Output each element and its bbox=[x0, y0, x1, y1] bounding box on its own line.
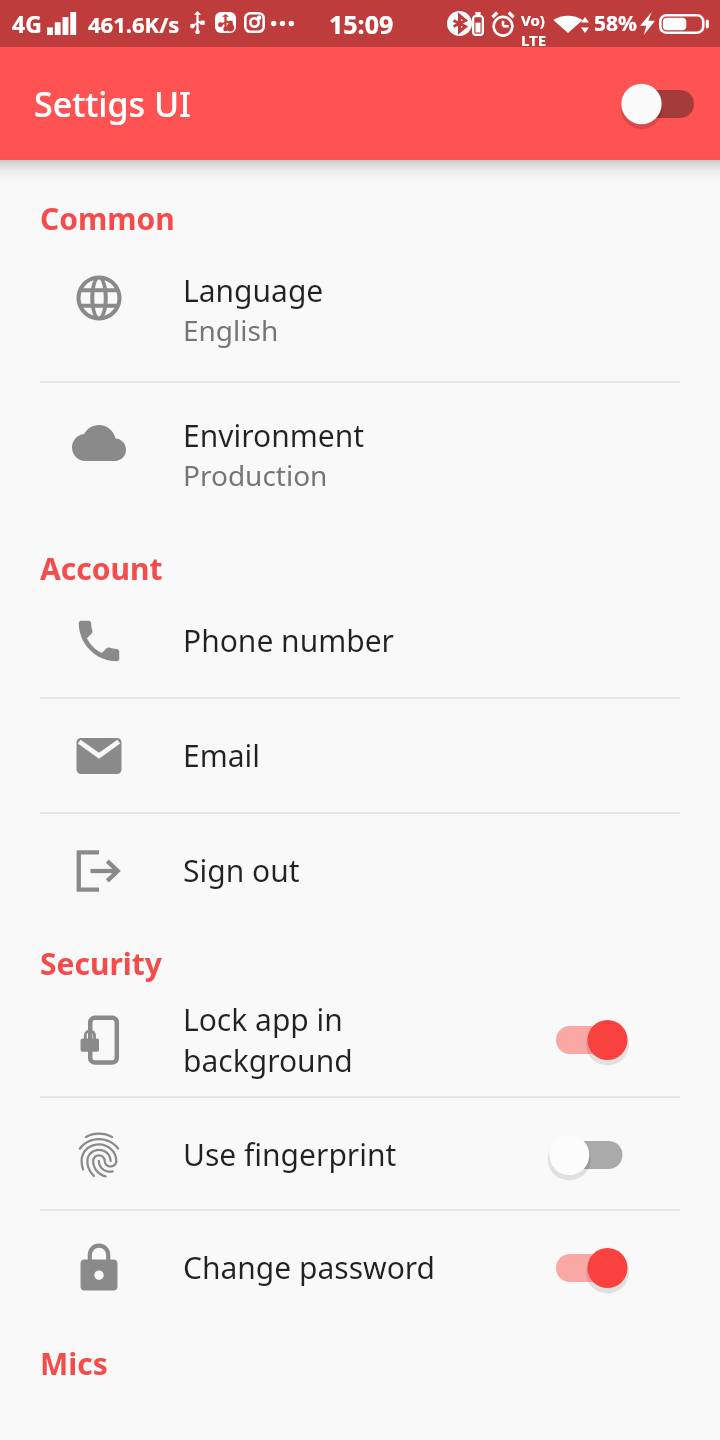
staticText: Lock app in background bbox=[183, 999, 501, 1081]
button[interactable]: Email bbox=[0, 698, 720, 813]
staticText: Language bbox=[183, 270, 324, 311]
staticText: 58% bbox=[594, 9, 637, 38]
staticText: Common bbox=[40, 198, 175, 239]
staticText: Use fingerprint bbox=[183, 1134, 397, 1175]
staticText: 4G bbox=[12, 8, 42, 39]
staticText: Settigs UI bbox=[34, 81, 192, 127]
button[interactable]: Dark mode bbox=[612, 73, 720, 135]
button[interactable]: Use fingerprint, off bbox=[536, 1124, 648, 1186]
staticText: Email bbox=[183, 735, 261, 776]
staticText: 15:09 bbox=[329, 7, 394, 41]
button[interactable]: Use fingerprint bbox=[0, 1097, 720, 1212]
staticText: LTE bbox=[521, 30, 547, 50]
button[interactable]: Environment bbox=[0, 382, 720, 527]
button[interactable]: Change password, on bbox=[536, 1237, 648, 1299]
staticText: Phone number bbox=[183, 620, 394, 661]
button[interactable]: Lock app in background bbox=[0, 982, 720, 1097]
button[interactable]: Lock app in background, on bbox=[536, 1009, 648, 1071]
button[interactable]: Phone number bbox=[0, 583, 720, 698]
staticText: Mics bbox=[40, 1343, 108, 1384]
staticText: 461.6K/s bbox=[88, 9, 180, 39]
staticText: Production bbox=[183, 456, 328, 494]
staticText: Sign out bbox=[183, 850, 300, 891]
button[interactable]: Change password bbox=[0, 1210, 720, 1325]
staticText: Security bbox=[40, 943, 162, 984]
staticText: Vo) bbox=[521, 10, 545, 30]
staticText: English bbox=[183, 311, 279, 349]
button[interactable]: Language bbox=[0, 237, 720, 382]
staticText: Account bbox=[40, 548, 163, 589]
button[interactable]: Sign out bbox=[0, 813, 720, 928]
staticText: Environment bbox=[183, 415, 365, 456]
staticText: Change password bbox=[183, 1247, 436, 1288]
